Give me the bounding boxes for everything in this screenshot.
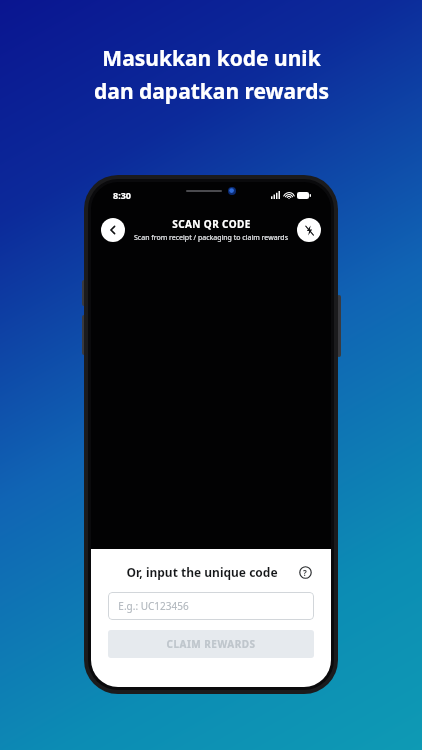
button[interactable]: Toggle flash xyxy=(297,218,321,242)
button[interactable]: E.g.: UC123456 xyxy=(108,592,314,620)
button[interactable]: Help xyxy=(296,563,314,581)
staticText: 8:30 xyxy=(113,189,131,201)
staticText: Or, input the unique code xyxy=(108,564,296,580)
staticText: CLAIM REWARDS xyxy=(166,637,256,651)
staticText: Scan from receipt / packaging to claim r… xyxy=(134,233,288,243)
staticText: ? xyxy=(303,567,307,578)
button[interactable]: CLAIM REWARDS xyxy=(108,630,314,658)
staticText: E.g.: UC123456 xyxy=(118,599,189,613)
staticText: dan dapatkan rewards xyxy=(94,77,329,106)
staticText: SCAN QR CODE xyxy=(172,217,251,231)
staticText: Masukkan kode unik xyxy=(102,44,321,73)
button[interactable]: Back xyxy=(101,218,125,242)
